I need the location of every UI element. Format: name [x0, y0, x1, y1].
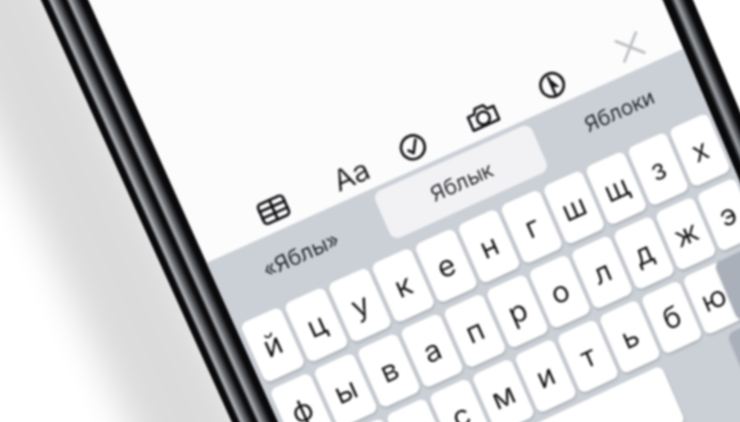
button[interactable]	[0, 0, 740, 422]
other: Phone showing note editor with Russian k…	[0, 0, 740, 422]
